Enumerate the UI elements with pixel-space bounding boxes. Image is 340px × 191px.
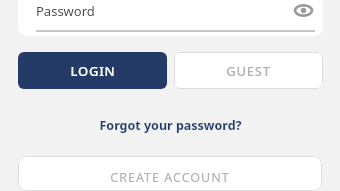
staticText: GUEST <box>226 62 271 80</box>
staticText: CREATE ACCOUNT <box>110 169 230 186</box>
staticText: LOGIN <box>70 62 116 80</box>
button[interactable]: CREATE ACCOUNT <box>18 156 322 191</box>
button[interactable]: GUEST <box>174 52 323 89</box>
button[interactable]: LOGIN <box>18 52 167 89</box>
button[interactable]: Forgot your password? <box>99 112 242 138</box>
button[interactable]: Show password <box>291 0 315 22</box>
staticText: Forgot your password? <box>99 117 242 134</box>
staticText: Password <box>36 2 95 20</box>
